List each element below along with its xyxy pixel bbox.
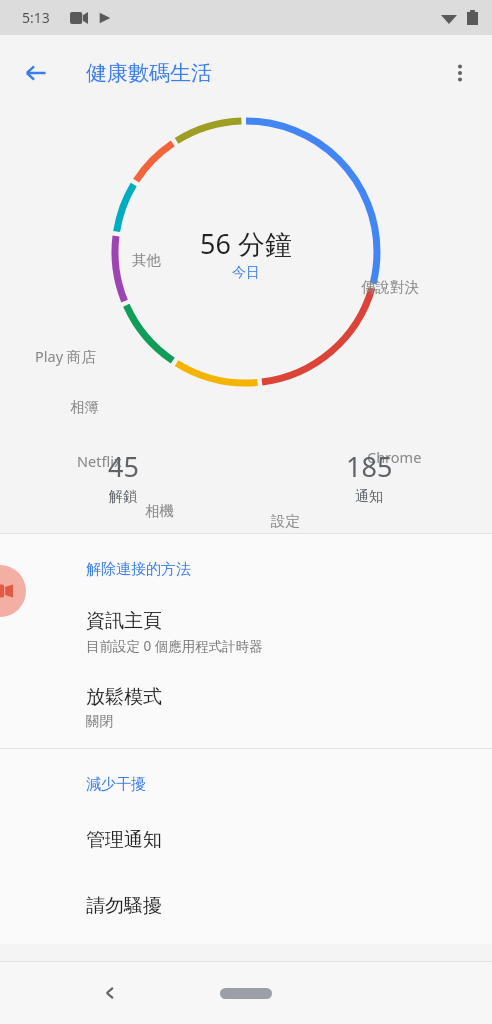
staticText: Netflix <box>77 451 122 471</box>
staticText: 設定 <box>271 512 300 530</box>
staticText: 資訊主頁 <box>86 609 162 633</box>
staticText: 今日 <box>232 264 260 282</box>
staticText: 5:13 <box>22 8 50 27</box>
button[interactable]: 45 <box>0 448 246 506</box>
button[interactable]: Back <box>86 969 134 1017</box>
button[interactable]: Back <box>12 49 60 97</box>
staticText: 目前設定 0 個應用程式計時器 <box>86 637 263 655</box>
staticText: Play 商店 <box>35 346 96 366</box>
button[interactable]: 放鬆模式 <box>0 659 492 734</box>
button[interactable]: More options <box>436 49 484 97</box>
staticText: 通知 <box>355 488 383 506</box>
staticText: 45 <box>108 448 139 485</box>
staticText: 請勿騷擾 <box>86 894 162 918</box>
staticText: 關閉 <box>86 713 113 730</box>
staticText: 相機 <box>145 502 174 520</box>
staticText: 健康數碼生活 <box>86 60 212 86</box>
staticText: 185 <box>346 448 393 485</box>
staticText: 傳說對決 <box>361 278 419 296</box>
staticText: 解除連接的方法 <box>86 560 191 579</box>
staticText: 相簿 <box>70 398 99 416</box>
button[interactable]: 185 <box>246 448 492 506</box>
staticText: Chrome <box>367 447 422 467</box>
button[interactable]: 資訊主頁 <box>0 583 492 659</box>
staticText: 其他 <box>132 251 161 269</box>
button[interactable]: 請勿騷擾 <box>0 864 492 930</box>
staticText: 減少干擾 <box>86 775 146 794</box>
button[interactable]: 管理通知 <box>0 798 492 864</box>
button[interactable]: Home <box>220 988 272 999</box>
staticText: 放鬆模式 <box>86 685 162 709</box>
staticText: 解鎖 <box>109 488 137 506</box>
staticText: 管理通知 <box>86 828 162 852</box>
button[interactable]: Screen recorder <box>0 565 26 617</box>
staticText: 56 分鐘 <box>200 225 292 262</box>
